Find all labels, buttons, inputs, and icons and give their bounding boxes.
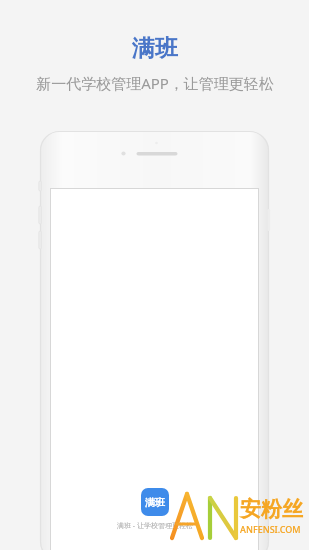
staticText: 满班 (145, 496, 165, 509)
staticText: 安粉丝 (240, 496, 303, 522)
staticText: 满班 - 让学校管理更轻松 (117, 521, 193, 531)
staticText: 满班 (132, 34, 178, 63)
staticText: ANFENSI.COM (240, 523, 301, 535)
button[interactable]: 满班 (117, 488, 193, 531)
staticText: 新一代学校管理APP，让管理更轻松 (36, 73, 274, 93)
